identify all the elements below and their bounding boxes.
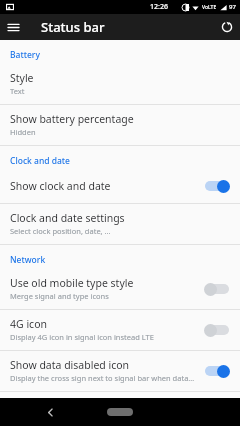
staticText: Clock and date settings: [10, 211, 125, 225]
staticText: Merge signal and type icons: [10, 291, 109, 301]
staticText: Show clock and date: [10, 179, 111, 193]
button[interactable]: Toggle, on: [202, 177, 232, 195]
button[interactable]: Reset to defaults: [214, 14, 240, 40]
staticText: VoLTE: [202, 4, 217, 11]
staticText: Select clock position, date, …: [10, 226, 111, 236]
staticText: 97: [229, 3, 236, 11]
staticText: Display the cross sign next to signal ba…: [10, 373, 196, 383]
button[interactable]: Style: [0, 64, 240, 104]
staticText: Network: [10, 254, 46, 266]
button[interactable]: Back: [38, 400, 62, 424]
button[interactable]: Use old mobile type style: [0, 269, 240, 309]
staticText: 12:26: [150, 2, 168, 12]
button[interactable]: Clock and date settings: [0, 204, 240, 244]
button[interactable]: Show battery percentage: [0, 105, 240, 145]
button[interactable]: Toggle, off: [202, 321, 232, 339]
staticText: Display 4G icon in signal icon instead L…: [10, 332, 154, 342]
button[interactable]: Toggle, off: [202, 280, 232, 298]
button[interactable]: Show data disabled icon: [0, 351, 240, 391]
staticText: Show data disabled icon: [10, 358, 130, 372]
staticText: Show battery percentage: [10, 112, 134, 126]
button[interactable]: Toggle, on: [202, 362, 232, 380]
button[interactable]: Home: [107, 408, 133, 416]
staticText: 4G icon: [10, 317, 47, 331]
staticText: Hidden: [10, 127, 36, 137]
button[interactable]: 4G icon: [0, 310, 240, 350]
staticText: Style: [10, 71, 34, 85]
button[interactable]: Open navigation menu: [0, 14, 26, 40]
button[interactable]: Show clock and date: [0, 170, 240, 203]
staticText: Use old mobile type style: [10, 276, 134, 290]
staticText: Text: [10, 86, 25, 96]
staticText: Clock and date: [10, 155, 70, 167]
staticText: Battery: [10, 49, 40, 61]
staticText: Status bar: [41, 18, 105, 36]
